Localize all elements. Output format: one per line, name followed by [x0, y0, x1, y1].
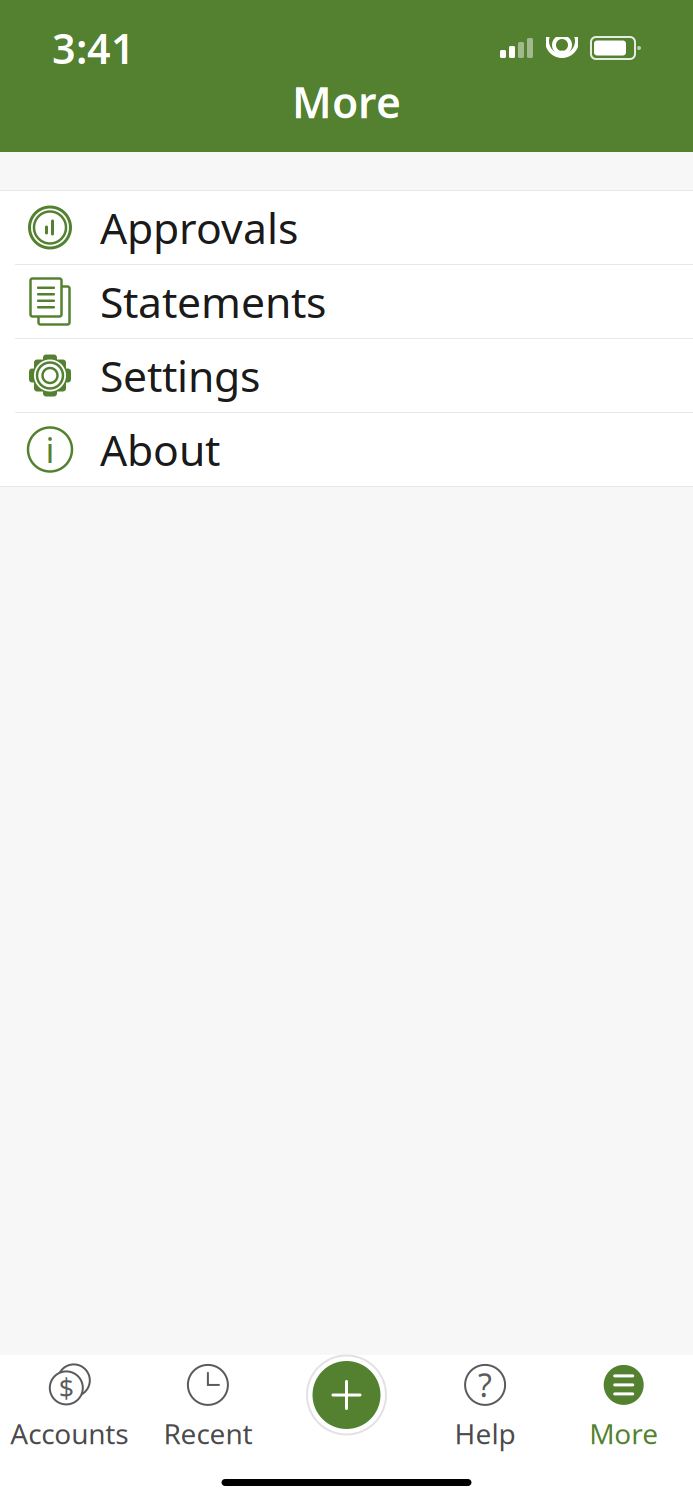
staticText: Statements: [100, 273, 326, 330]
staticText: ?: [478, 1364, 492, 1406]
staticText: More: [589, 1415, 658, 1452]
staticText: Accounts: [10, 1415, 128, 1452]
button[interactable]: $: [0, 1348, 139, 1462]
staticText: Help: [455, 1415, 516, 1452]
staticText: Recent: [163, 1415, 252, 1452]
button[interactable]: Statements: [0, 265, 693, 339]
staticText: Approvals: [100, 199, 298, 256]
staticText: About: [100, 421, 220, 478]
button[interactable]: i: [0, 413, 693, 487]
button[interactable]: Recent: [139, 1348, 277, 1462]
button[interactable]: Settings: [0, 339, 693, 413]
staticText: 3:41: [52, 21, 135, 75]
button[interactable]: More: [554, 1348, 693, 1462]
staticText: $: [59, 1370, 74, 1406]
staticText: Settings: [100, 347, 260, 404]
staticText: i: [45, 426, 54, 472]
button[interactable]: ?: [416, 1348, 554, 1462]
button[interactable]: Add: [306, 1355, 386, 1435]
staticText: More: [292, 73, 401, 130]
button[interactable]: Approvals: [0, 191, 693, 265]
